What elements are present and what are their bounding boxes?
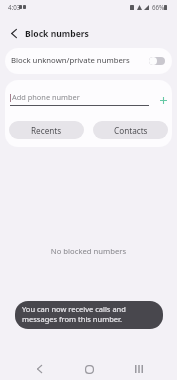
staticText: No blocked numbers	[0, 246, 177, 256]
button[interactable]: Block unknown/private numbers	[5, 48, 172, 74]
button[interactable]: Contacts	[93, 121, 168, 139]
button[interactable]: Back	[25, 357, 53, 380]
staticText: 4:03	[8, 3, 21, 11]
button[interactable]: Navigate up	[3, 22, 25, 44]
staticText: Add phone number	[12, 92, 80, 102]
button[interactable]: Add phone number	[10, 90, 149, 110]
staticText: Block numbers	[25, 28, 89, 40]
button[interactable]: Recents	[9, 121, 84, 139]
button[interactable]: Recent apps	[125, 357, 153, 380]
staticText: Block unknown/private numbers	[11, 55, 130, 66]
staticText: You can now receive calls and messages f…	[22, 304, 126, 324]
button[interactable]: Home	[75, 357, 103, 380]
staticText: 66%	[152, 3, 165, 11]
staticText: Contacts	[114, 125, 148, 136]
staticText: Recents	[31, 125, 62, 136]
button[interactable]: Add number	[154, 91, 172, 109]
